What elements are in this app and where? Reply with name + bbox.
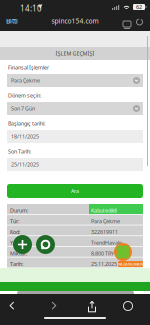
staticText: Tür:: [10, 218, 19, 225]
staticText: Kod:: [10, 228, 20, 235]
staticText: 25/11/2025: [11, 161, 39, 168]
button[interactable]: Bitti: [2, 14, 22, 28]
staticText: Finansal İşlemler: [8, 64, 49, 71]
button[interactable]: Back: [1, 298, 23, 314]
button[interactable]: 18/11/2025: [7, 130, 143, 143]
staticText: 62: [136, 3, 142, 11]
staticText: İŞLEM GEÇMİŞİ: [55, 50, 94, 57]
button[interactable]: WhatsApp support: [36, 235, 55, 254]
staticText: Durum:: [10, 207, 28, 214]
button[interactable]: Page settings: [120, 14, 132, 28]
staticText: Yöntem:: [10, 239, 30, 246]
staticText: Miktar:: [10, 250, 27, 257]
staticText: Son Tarih:: [8, 148, 31, 155]
staticText: Para Çekme: [11, 77, 40, 84]
button[interactable]: Reload: [133, 14, 145, 28]
staticText: 322619911: [91, 228, 118, 235]
staticText: 14:10: [20, 3, 42, 14]
button[interactable]: Son 7 Gün: [7, 102, 143, 115]
button[interactable]: Add: [13, 235, 32, 254]
staticText: KAZANDIRAN: [118, 261, 143, 267]
staticText: 18/11/2025: [11, 133, 39, 140]
staticText: Tarih:: [10, 260, 23, 268]
staticText: TrendHavale: [91, 239, 122, 246]
button[interactable]: KAZANDIRAN: [118, 261, 143, 267]
button[interactable]: Bookmarks: [117, 298, 139, 314]
staticText: 8.800 TRY: [91, 250, 114, 257]
staticText: spinco154.com: [51, 17, 98, 25]
button[interactable]: 25/11/2025: [7, 158, 143, 171]
staticText: Para Çekme: [91, 218, 120, 225]
button[interactable]: Promotion: [114, 243, 132, 261]
button[interactable]: Ara: [7, 184, 143, 198]
staticText: Başlangıç tarihi:: [8, 120, 45, 127]
staticText: Kabul edildi: [91, 207, 117, 214]
button[interactable]: Share: [81, 298, 103, 314]
staticText: 25.11.2025: [91, 260, 117, 268]
button[interactable]: Para Çekme: [7, 74, 143, 87]
staticText: Bitti: [6, 17, 18, 25]
button[interactable]: Forward: [43, 298, 65, 314]
staticText: Son 7 Gün: [11, 105, 35, 112]
staticText: Ara: [71, 187, 79, 195]
staticText: Dönem seçin:: [8, 92, 41, 99]
